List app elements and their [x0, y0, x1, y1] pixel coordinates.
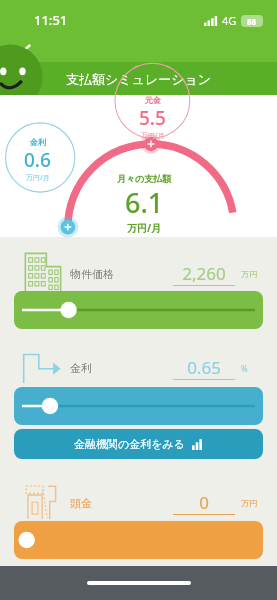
staticText: 金利 — [70, 361, 92, 375]
staticText: 5.5 — [139, 105, 166, 131]
staticText: 0.6 — [24, 147, 51, 173]
button[interactable] — [14, 291, 263, 329]
staticText: 6.1 — [125, 184, 164, 221]
staticText: 0.65 — [173, 356, 235, 379]
button[interactable]: Back — [10, 34, 44, 68]
staticText: 元金 — [145, 95, 161, 105]
staticText: 支払額シミュレーション — [66, 71, 212, 87]
staticText: % — [241, 363, 263, 374]
button[interactable] — [14, 387, 263, 425]
staticText: 0 — [173, 491, 235, 514]
button[interactable]: 金融機関の金利をみる — [14, 429, 263, 459]
staticText: 月々の支払額 — [117, 173, 172, 184]
button[interactable] — [14, 521, 263, 559]
staticText: 万円/月 — [26, 173, 50, 183]
staticText: 金融機関の金利をみる — [74, 437, 186, 451]
staticText: 頭金 — [70, 496, 92, 510]
staticText: 4G — [222, 13, 237, 28]
staticText: 88 — [247, 16, 257, 27]
staticText: 金利 — [30, 137, 46, 147]
staticText: 万円 — [241, 498, 263, 508]
staticText: 万円/月 — [127, 221, 162, 235]
staticText: 2,260 — [173, 262, 235, 285]
staticText: 万円 — [241, 269, 263, 279]
staticText: 11:51 — [34, 11, 68, 29]
staticText: 万円/月 — [141, 131, 165, 141]
staticText: 物件価格 — [70, 267, 114, 281]
